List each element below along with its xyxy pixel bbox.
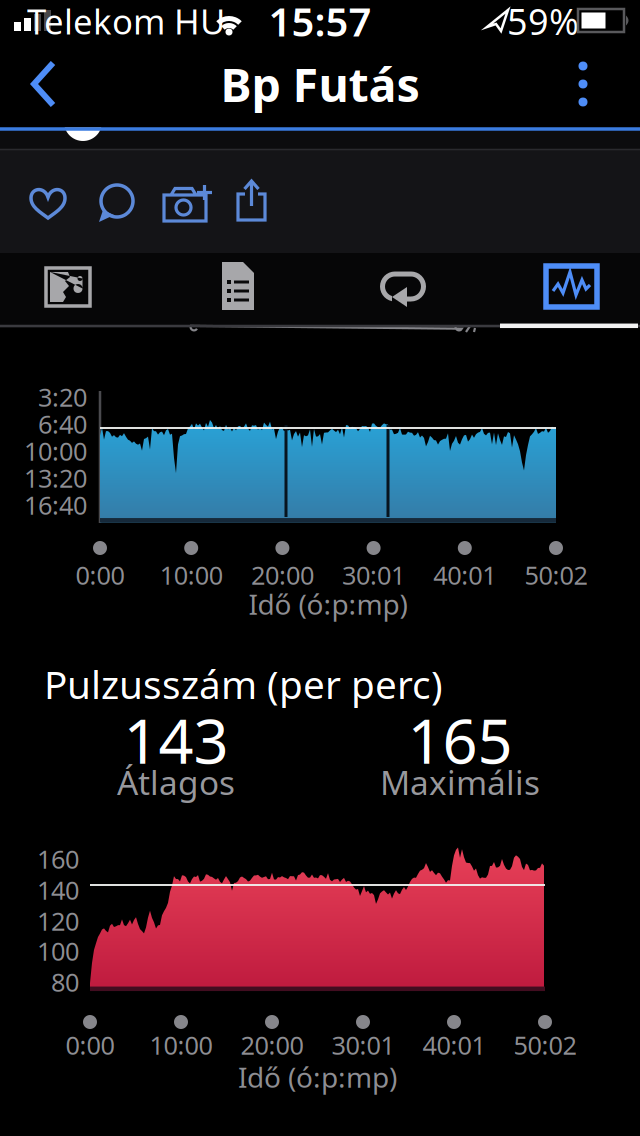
staticText: Telekom HU bbox=[27, 0, 225, 44]
button[interactable]: Back bbox=[24, 56, 64, 112]
staticText: 20:00 bbox=[251, 558, 314, 592]
button[interactable]: Share bbox=[230, 174, 274, 228]
staticText: 160 bbox=[37, 842, 79, 876]
staticText: 50:02 bbox=[513, 1028, 576, 1062]
button[interactable]: Add photo bbox=[158, 178, 218, 228]
staticText: 143 bbox=[123, 699, 228, 781]
staticText: Maximális bbox=[380, 760, 540, 804]
staticText: 10:00 bbox=[149, 1028, 212, 1062]
staticText: 50:02 bbox=[524, 558, 587, 592]
staticText: 10:00 bbox=[24, 434, 87, 468]
staticText: 120 bbox=[37, 904, 79, 938]
button[interactable]: Charts bbox=[538, 258, 606, 316]
staticText: Pulzusszám (per perc) bbox=[44, 658, 443, 710]
staticText: Bp Futás bbox=[220, 53, 419, 115]
staticText: 40:01 bbox=[422, 1028, 485, 1062]
staticText: Átlagos bbox=[117, 760, 235, 804]
staticText: 15:57 bbox=[268, 0, 371, 47]
button[interactable]: Map bbox=[36, 256, 100, 318]
staticText: 0:00 bbox=[65, 1028, 114, 1062]
staticText: 59% bbox=[507, 0, 579, 45]
button[interactable]: More bbox=[561, 56, 605, 112]
staticText: Idő (ó:p:mp) bbox=[238, 1058, 397, 1096]
staticText: 20:00 bbox=[240, 1028, 303, 1062]
staticText: 140 bbox=[37, 873, 79, 907]
staticText: 6:40 bbox=[38, 407, 87, 441]
staticText: Idő (ó:p:mp) bbox=[248, 585, 407, 623]
button[interactable]: Like bbox=[22, 178, 74, 228]
button[interactable]: Laps bbox=[372, 262, 434, 314]
staticText: 80 bbox=[51, 965, 79, 999]
staticText: 13:20 bbox=[24, 461, 87, 495]
staticText: 10:00 bbox=[160, 558, 223, 592]
staticText: 3:20 bbox=[38, 380, 87, 414]
staticText: 100 bbox=[37, 934, 79, 968]
staticText: 0:00 bbox=[75, 558, 124, 592]
staticText: 30:01 bbox=[342, 558, 405, 592]
staticText: 40:01 bbox=[433, 558, 496, 592]
button[interactable]: Details bbox=[214, 254, 262, 318]
staticText: 16:40 bbox=[24, 488, 87, 522]
staticText: 165 bbox=[407, 699, 512, 781]
button[interactable]: Comment bbox=[92, 178, 142, 228]
staticText: 30:01 bbox=[331, 1028, 394, 1062]
